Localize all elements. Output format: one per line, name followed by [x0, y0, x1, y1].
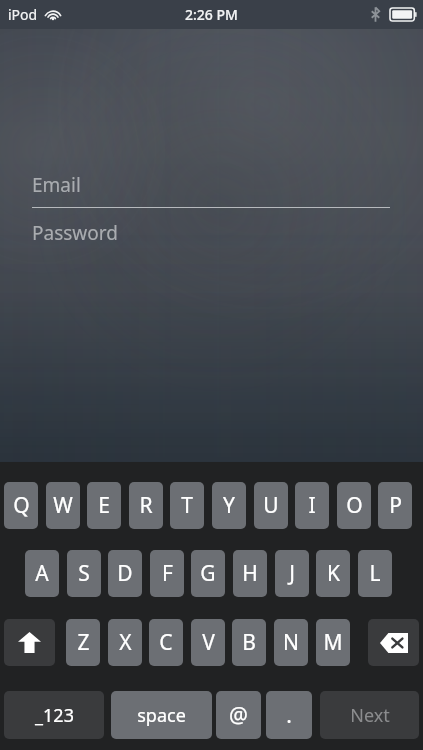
- button[interactable]: N: [274, 619, 308, 666]
- staticText: H: [242, 559, 258, 588]
- button[interactable]: space: [111, 691, 212, 739]
- staticText: V: [202, 628, 215, 657]
- button[interactable]: Email: [0, 162, 423, 207]
- staticText: W: [53, 491, 73, 520]
- button[interactable]: B: [232, 619, 266, 666]
- staticText: 2:26 PM: [185, 5, 238, 24]
- staticText: Email: [32, 172, 81, 198]
- staticText: S: [78, 559, 90, 588]
- button[interactable]: H: [233, 550, 267, 597]
- staticText: C: [159, 628, 173, 657]
- button[interactable]: W: [46, 482, 80, 529]
- staticText: Next: [350, 703, 390, 728]
- staticText: N: [283, 628, 299, 657]
- button[interactable]: O: [337, 482, 371, 529]
- button[interactable]: V: [191, 619, 225, 666]
- staticText: J: [289, 559, 295, 588]
- button[interactable]: U: [254, 482, 288, 529]
- button[interactable]: E: [87, 482, 121, 529]
- staticText: X: [119, 628, 132, 657]
- button[interactable]: _123: [4, 691, 104, 739]
- staticText: iPod: [8, 5, 38, 24]
- button[interactable]: R: [129, 482, 163, 529]
- button[interactable]: L: [358, 550, 392, 597]
- button[interactable]: .: [266, 691, 312, 739]
- staticText: T: [181, 491, 193, 520]
- staticText: P: [389, 491, 402, 520]
- staticText: Y: [223, 491, 235, 520]
- button[interactable]: P: [378, 482, 412, 529]
- staticText: E: [98, 491, 110, 520]
- staticText: I: [308, 491, 316, 520]
- button[interactable]: F: [150, 550, 184, 597]
- staticText: F: [162, 559, 173, 588]
- staticText: Z: [77, 628, 90, 657]
- button[interactable]: Q: [4, 482, 38, 529]
- button[interactable]: Password: [0, 208, 423, 258]
- staticText: _123: [35, 703, 74, 728]
- staticText: Q: [13, 491, 30, 520]
- button[interactable]: S: [67, 550, 101, 597]
- staticText: .: [286, 701, 292, 730]
- staticText: @: [229, 701, 248, 730]
- button[interactable]: I: [295, 482, 329, 529]
- staticText: Password: [32, 220, 118, 246]
- staticText: B: [242, 628, 256, 657]
- staticText: O: [346, 491, 363, 520]
- button[interactable]: J: [275, 550, 309, 597]
- staticText: D: [117, 559, 133, 588]
- staticText: space: [137, 703, 186, 728]
- button[interactable]: Backspace: [368, 619, 419, 666]
- staticText: U: [263, 491, 279, 520]
- staticText: K: [327, 559, 340, 588]
- button[interactable]: M: [316, 619, 350, 666]
- button[interactable]: X: [108, 619, 142, 666]
- button[interactable]: Z: [66, 619, 100, 666]
- button[interactable]: T: [170, 482, 204, 529]
- staticText: A: [35, 559, 49, 588]
- button[interactable]: Next: [320, 691, 419, 739]
- staticText: G: [200, 559, 216, 588]
- button[interactable]: Y: [212, 482, 246, 529]
- staticText: L: [369, 559, 381, 588]
- staticText: R: [139, 491, 153, 520]
- button[interactable]: D: [108, 550, 142, 597]
- button[interactable]: @: [216, 691, 261, 739]
- button[interactable]: G: [191, 550, 225, 597]
- button[interactable]: C: [149, 619, 183, 666]
- staticText: M: [323, 628, 343, 657]
- button[interactable]: A: [25, 550, 59, 597]
- button[interactable]: Shift: [4, 619, 55, 666]
- button[interactable]: K: [316, 550, 350, 597]
